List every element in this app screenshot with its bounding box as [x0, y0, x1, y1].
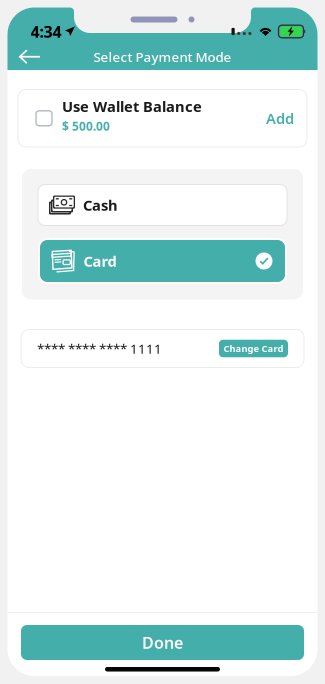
staticText: 4:34	[30, 21, 61, 42]
staticText: **** **** **** 1111	[37, 340, 162, 357]
staticText: Cash	[83, 195, 118, 215]
staticText: Use Wallet Balance	[62, 96, 202, 116]
staticText: Done	[142, 632, 183, 653]
staticText: Change Card	[223, 342, 283, 355]
button[interactable]: Back	[10, 42, 49, 71]
button[interactable]: Cash	[38, 184, 287, 225]
staticText: Card	[83, 251, 116, 271]
button[interactable]: Card	[38, 238, 287, 284]
staticText: $ 500.00	[62, 118, 110, 134]
staticText: Select Payment Mode	[93, 48, 231, 66]
button[interactable]: Done	[21, 625, 304, 660]
staticText: Add	[266, 108, 294, 128]
button[interactable]: Change Card	[219, 340, 288, 357]
button[interactable]: Add	[262, 102, 298, 134]
